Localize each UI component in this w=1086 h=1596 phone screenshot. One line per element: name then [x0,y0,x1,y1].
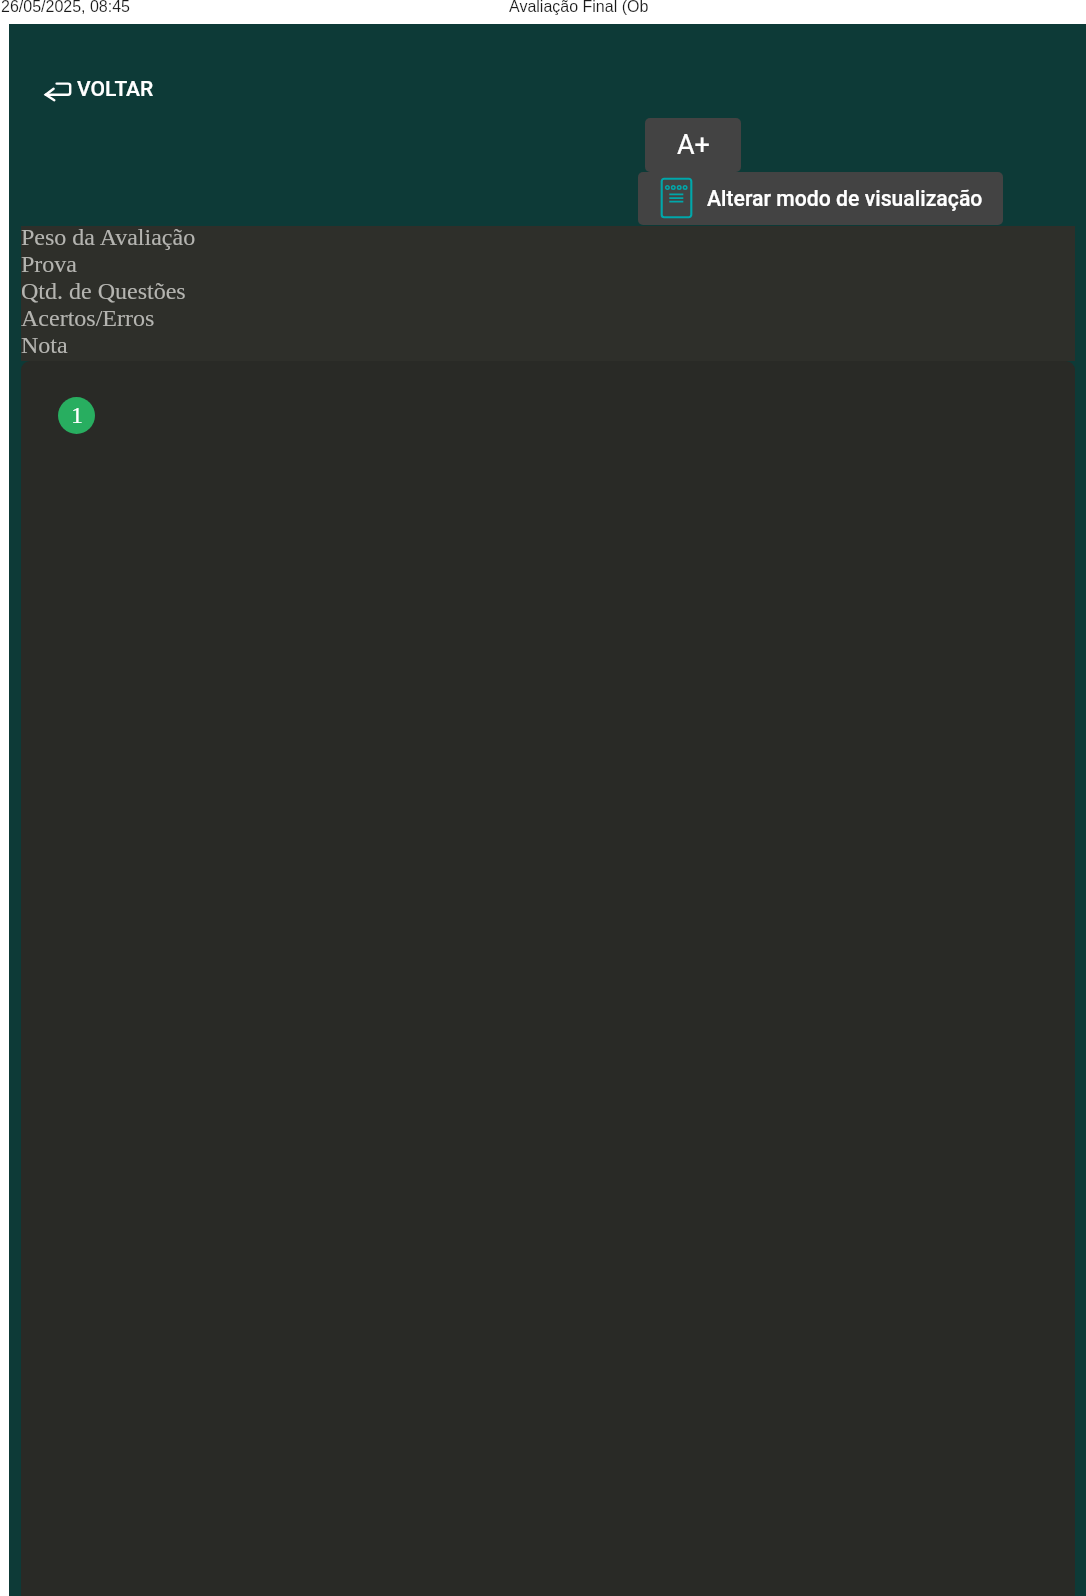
staticText: Qtd. de Questões [21,278,186,305]
button[interactable]: A+ [645,118,741,172]
staticText: Alterar modo de visualização [707,186,983,211]
staticText: Nota [21,332,68,359]
staticText: 26/05/2025, 08:45 [1,0,131,16]
button[interactable]: VOLTAR [40,74,156,104]
other: Modo de visualização [661,178,692,219]
button[interactable]: Modo de visualização [638,172,1003,225]
button[interactable]: 1 [58,397,95,434]
staticText: 1 [71,402,83,429]
staticText: Avaliação Final (Ob [509,0,649,16]
staticText: VOLTAR [77,76,154,101]
staticText: Peso da Avaliação [21,224,196,251]
staticText: Acertos/Erros [21,305,155,332]
staticText: A+ [677,129,710,161]
staticText: Prova [21,251,77,278]
